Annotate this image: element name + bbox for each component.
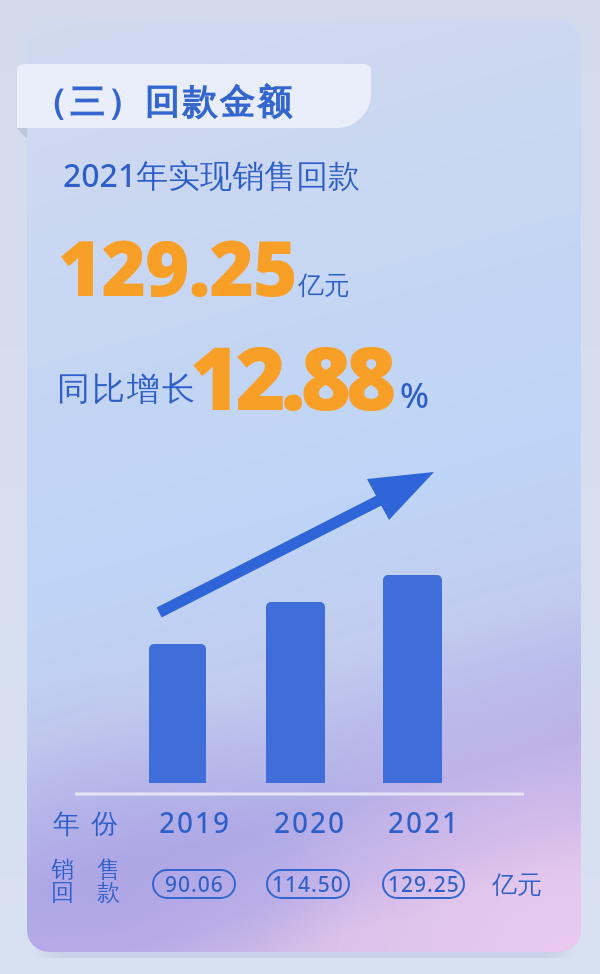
staticText: 销 售 xyxy=(51,852,120,883)
staticText: 129.25 xyxy=(58,215,297,319)
staticText: （三）回款金额 xyxy=(32,80,295,124)
staticText: 2021 xyxy=(388,803,461,841)
staticText: 回 款 xyxy=(51,875,120,906)
staticText: 12.88 xyxy=(190,318,392,435)
staticText: 129.25 xyxy=(388,870,460,899)
staticText: 2020 xyxy=(274,803,347,841)
staticText: 90.06 xyxy=(165,870,224,899)
staticText: 114.50 xyxy=(272,870,344,899)
staticText: 2019 xyxy=(159,803,232,841)
staticText: 2021年实现销售回款 xyxy=(63,153,361,197)
staticText: 年 份 xyxy=(53,804,121,841)
staticText: % xyxy=(400,372,429,418)
staticText: 亿元 xyxy=(298,269,350,302)
staticText: 同比增长 xyxy=(56,368,196,410)
staticText: 亿元 xyxy=(492,869,542,900)
